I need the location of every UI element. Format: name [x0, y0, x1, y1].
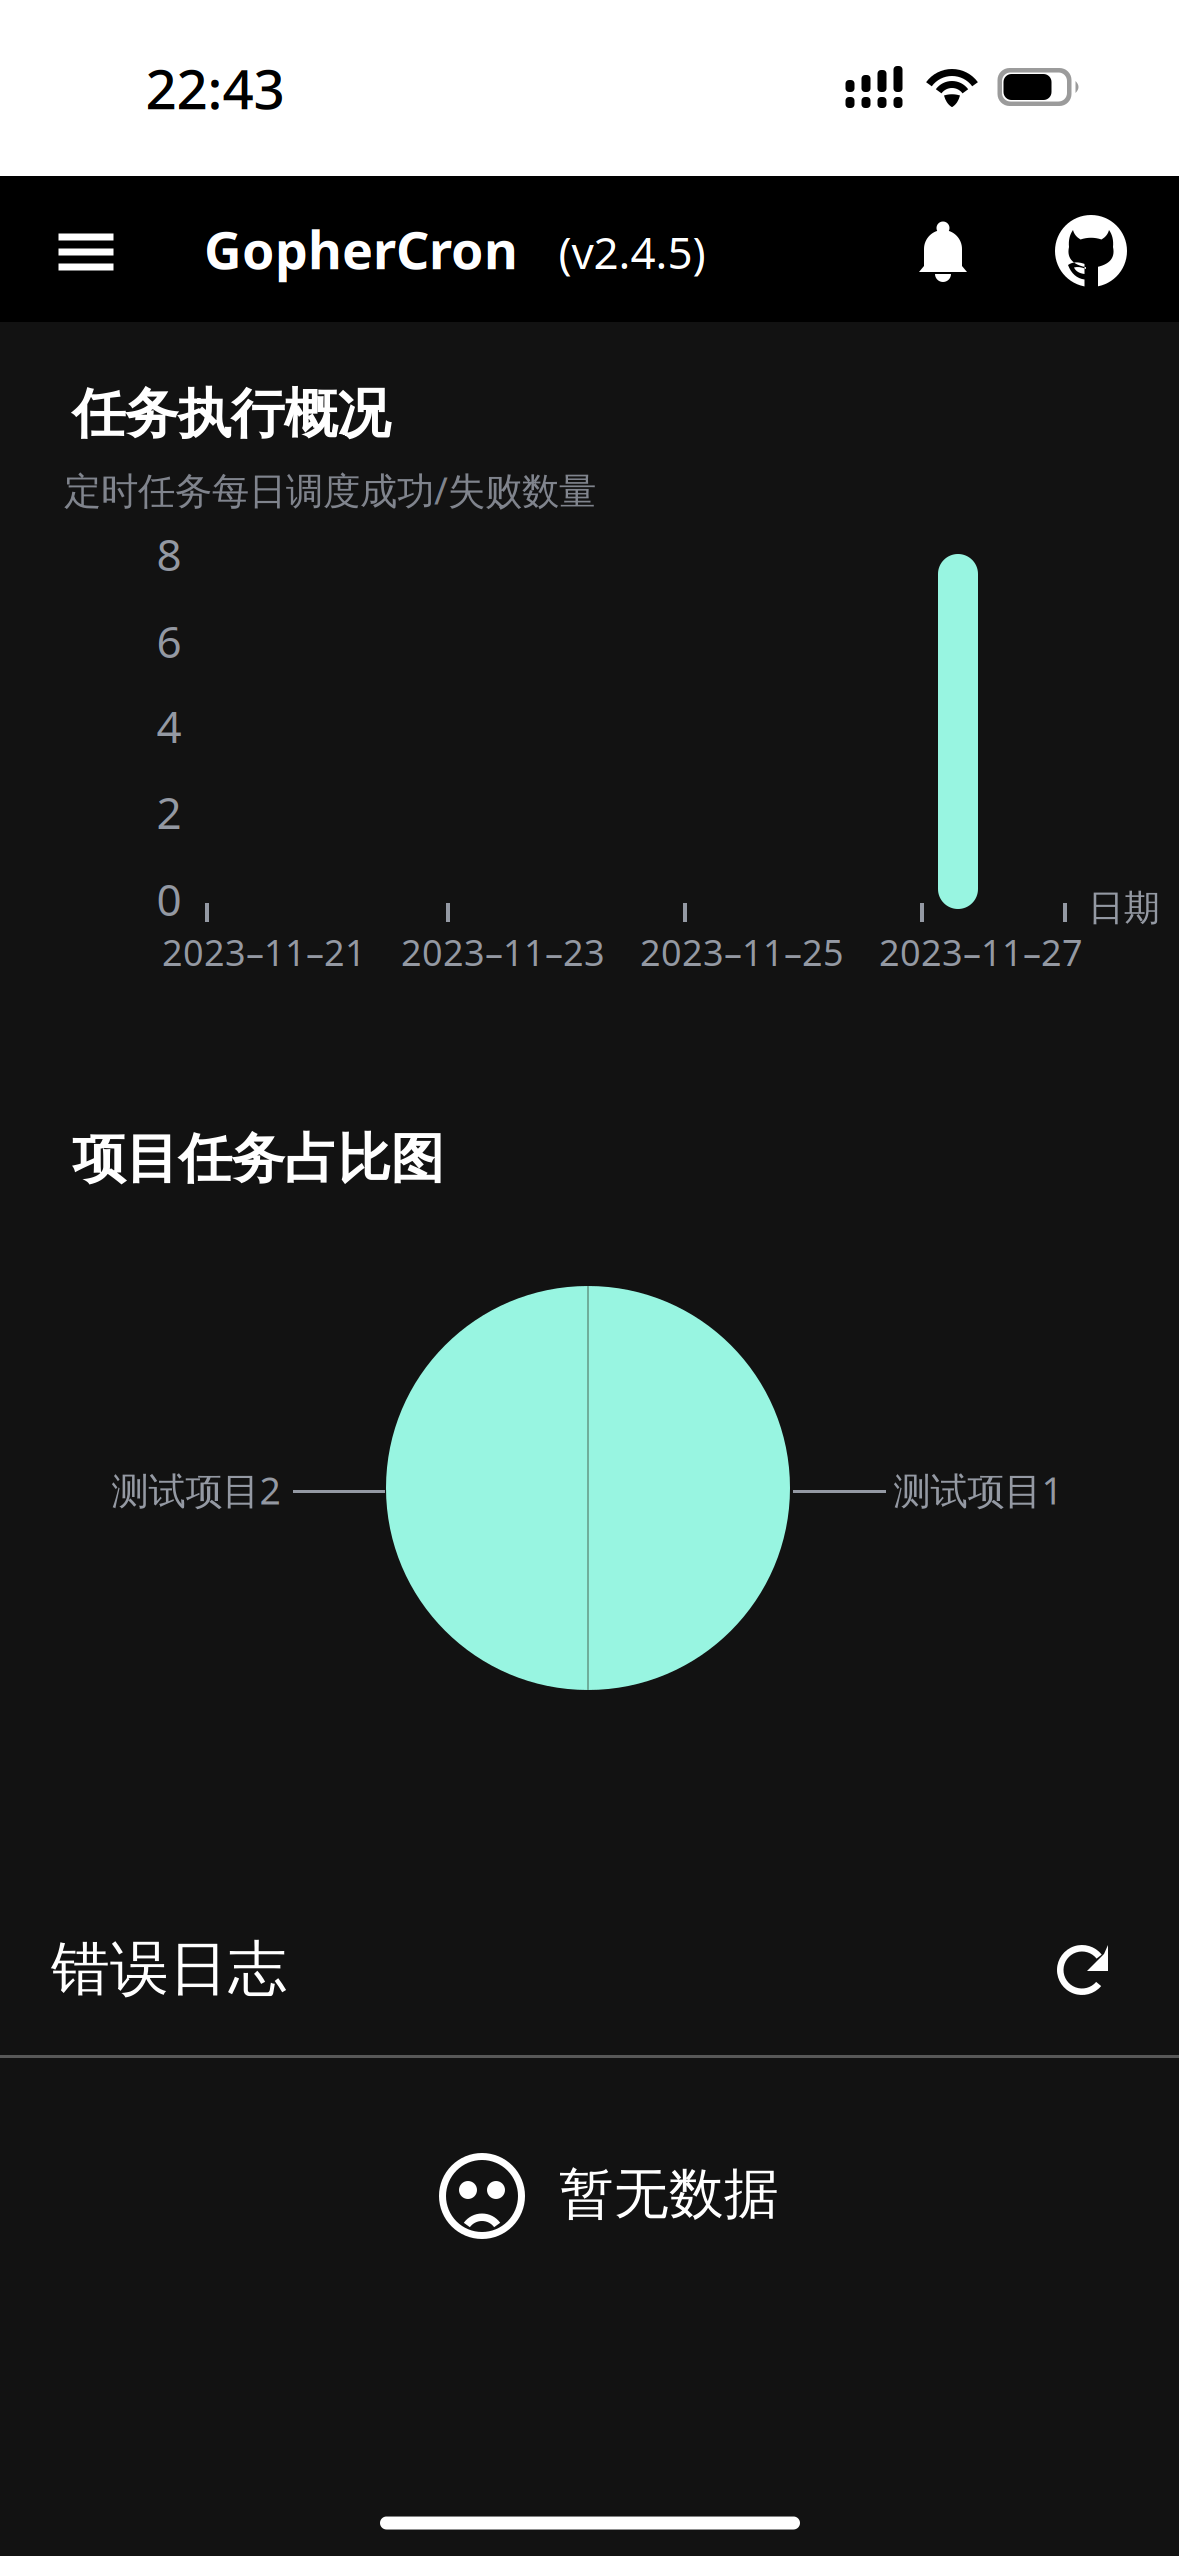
staticText: 测试项目2 [111, 1465, 280, 1515]
staticText: 日期 [1088, 886, 1160, 930]
staticText: 2023–11–25 [640, 928, 844, 976]
staticText: 2023–11–21 [162, 928, 366, 976]
staticText: 0 [156, 870, 181, 928]
button[interactable]: GitHub [1029, 189, 1153, 313]
staticText: 测试项目1 [893, 1465, 1062, 1515]
staticText: (v2.4.5) [558, 223, 705, 281]
button[interactable]: Refresh [1042, 1928, 1126, 2012]
staticText: 8 [156, 525, 181, 583]
staticText: 任务执行概况 [72, 381, 390, 447]
staticText: 22:43 [145, 52, 284, 124]
staticText: 项目任务占比图 [72, 1126, 443, 1192]
staticText: 4 [156, 697, 181, 755]
staticText: 2 [156, 783, 181, 841]
staticText: 6 [156, 612, 181, 670]
staticText: 定时任务每日调度成功/失败数量 [64, 465, 596, 515]
staticText: 2023–11–27 [879, 928, 1083, 976]
button[interactable]: Menu [26, 193, 145, 310]
button[interactable]: Notifications [889, 194, 997, 310]
staticText: 2023–11–23 [401, 928, 605, 976]
staticText: GopherCron [204, 214, 518, 284]
staticText: 错误日志 [51, 1933, 287, 2005]
staticText: 暂无数据 [559, 2160, 779, 2227]
